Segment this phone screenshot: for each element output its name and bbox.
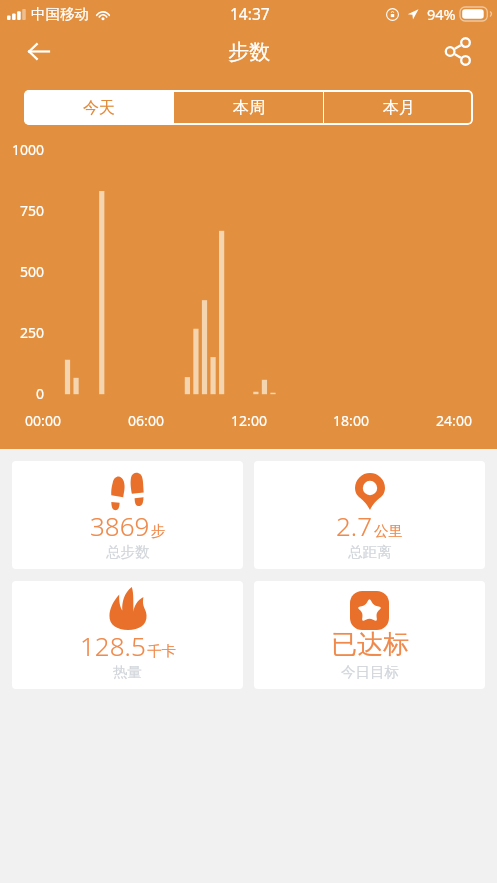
staticText: 热量 bbox=[113, 663, 142, 681]
staticText: 中国移动 bbox=[31, 5, 89, 23]
staticText: 94% bbox=[427, 4, 456, 24]
staticText: 0 bbox=[0, 384, 44, 403]
staticText: 128.5 bbox=[80, 628, 146, 663]
staticText: 今日目标 bbox=[341, 663, 399, 681]
staticText: 今天 bbox=[83, 98, 115, 118]
staticText: 250 bbox=[0, 323, 44, 342]
staticText: 14:37 bbox=[230, 3, 270, 24]
staticText: 00:00 bbox=[8, 411, 78, 430]
staticText: 总步数 bbox=[106, 543, 150, 561]
button[interactable]: 本周 bbox=[174, 90, 323, 125]
button[interactable]: 128.5 bbox=[12, 581, 243, 689]
button[interactable]: Share bbox=[438, 31, 478, 71]
staticText: 500 bbox=[0, 262, 44, 281]
button[interactable]: 3869 bbox=[12, 461, 243, 569]
button[interactable]: 已达标 bbox=[254, 581, 485, 689]
button[interactable]: Back bbox=[17, 30, 60, 72]
staticText: 750 bbox=[0, 201, 44, 220]
staticText: 12:00 bbox=[214, 411, 284, 430]
staticText: 24:00 bbox=[419, 411, 489, 430]
staticText: 本周 bbox=[233, 98, 265, 118]
button[interactable]: 今天 bbox=[24, 90, 173, 125]
button[interactable]: 本月 bbox=[324, 90, 473, 125]
staticText: 3869 bbox=[90, 508, 150, 543]
staticText: 公里 bbox=[374, 522, 403, 540]
button[interactable]: 2.7 bbox=[254, 461, 485, 569]
staticText: 步数 bbox=[228, 39, 270, 65]
staticText: 2.7 bbox=[336, 508, 373, 543]
staticText: 已达标 bbox=[331, 628, 409, 661]
staticText: 1000 bbox=[0, 140, 44, 159]
staticText: 步 bbox=[151, 522, 166, 540]
staticText: 千卡 bbox=[147, 642, 176, 660]
staticText: 总距离 bbox=[348, 543, 392, 561]
staticText: 06:00 bbox=[111, 411, 181, 430]
staticText: 18:00 bbox=[316, 411, 386, 430]
staticText: 本月 bbox=[383, 98, 415, 118]
